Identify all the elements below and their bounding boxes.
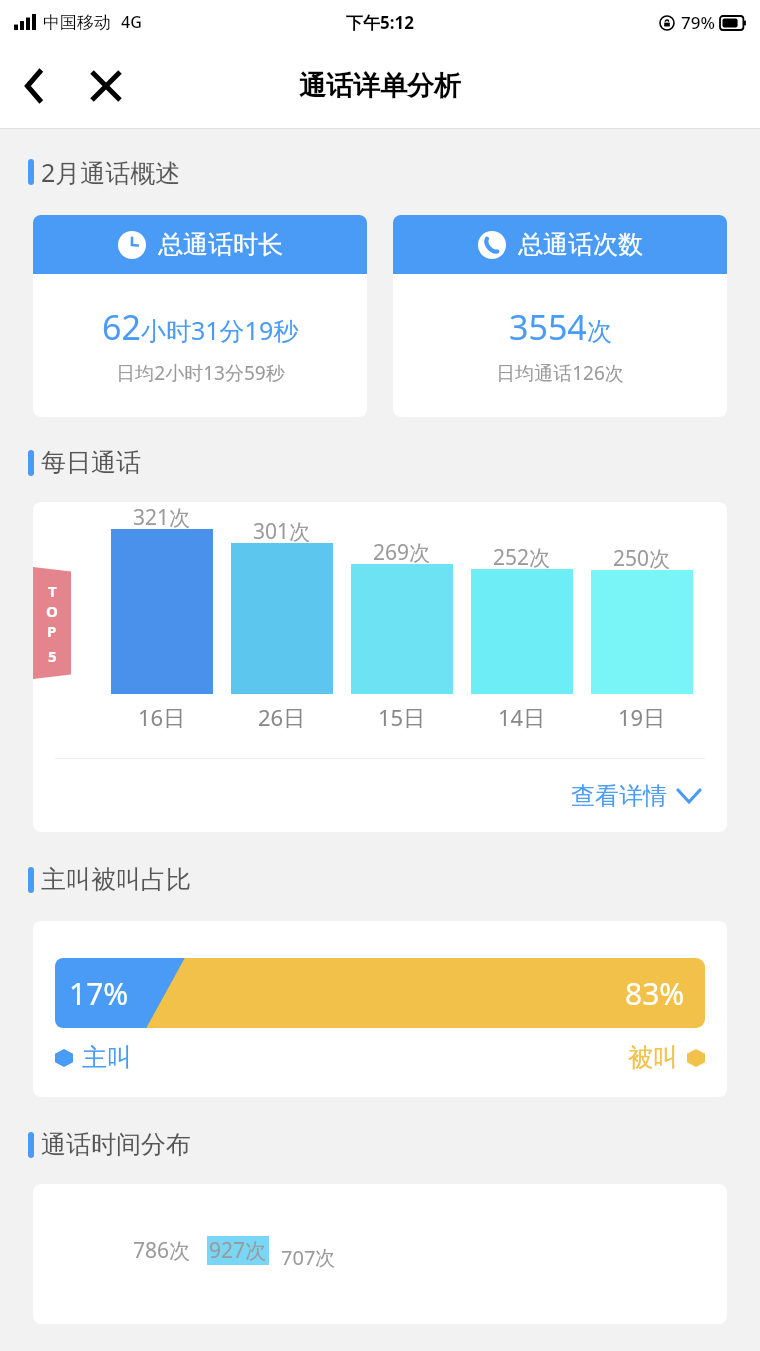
- staticText: 次: [587, 316, 612, 347]
- staticText: 786次: [133, 1236, 191, 1265]
- staticText: 被叫: [628, 1042, 678, 1073]
- staticText: 通话详单分析: [299, 69, 461, 103]
- staticText: 19日: [618, 702, 666, 732]
- staticText: 252次: [493, 543, 551, 572]
- staticText: 总通话次数: [518, 229, 643, 260]
- button[interactable]: 总通话时长: [33, 215, 367, 417]
- staticText: 26日: [258, 702, 306, 732]
- staticText: 小时31分19秒: [141, 313, 299, 347]
- staticText: 查看详情: [571, 781, 667, 811]
- staticText: 5: [48, 646, 57, 666]
- button[interactable]: Back: [8, 59, 62, 113]
- staticText: 707次: [281, 1244, 336, 1271]
- staticText: 2月通话概述: [41, 155, 181, 189]
- staticText: 中国移动: [43, 12, 111, 33]
- staticText: 62: [102, 304, 141, 350]
- staticText: 日均2小时13分59秒: [116, 360, 285, 386]
- staticText: 4G: [121, 11, 142, 33]
- staticText: 通话时间分布: [41, 1129, 191, 1160]
- staticText: 17%: [69, 973, 129, 1014]
- button[interactable]: Close: [78, 58, 134, 114]
- staticText: 321次: [133, 503, 191, 532]
- staticText: 83%: [625, 973, 685, 1014]
- staticText: 日均通话126次: [496, 360, 624, 386]
- staticText: 总通话时长: [158, 229, 283, 260]
- staticText: T: [48, 581, 57, 601]
- button[interactable]: 查看详情: [33, 759, 727, 832]
- button[interactable]: 总通话次数: [393, 215, 727, 417]
- staticText: O: [46, 601, 58, 621]
- staticText: 主叫被叫占比: [41, 864, 191, 895]
- staticText: 79%: [681, 11, 715, 34]
- button[interactable]: 被叫: [628, 1042, 705, 1073]
- staticText: 250次: [613, 544, 671, 573]
- staticText: 301次: [253, 517, 311, 546]
- staticText: 每日通话: [41, 447, 141, 478]
- staticText: 主叫: [82, 1042, 132, 1073]
- staticText: P: [47, 621, 57, 641]
- staticText: 14日: [498, 702, 546, 732]
- staticText: 269次: [373, 538, 431, 567]
- button[interactable]: 主叫: [55, 1042, 132, 1073]
- staticText: 927次: [209, 1236, 267, 1265]
- staticText: 下午5:12: [346, 11, 414, 34]
- staticText: 16日: [138, 702, 186, 732]
- staticText: 15日: [378, 702, 426, 732]
- staticText: 3554: [509, 304, 587, 350]
